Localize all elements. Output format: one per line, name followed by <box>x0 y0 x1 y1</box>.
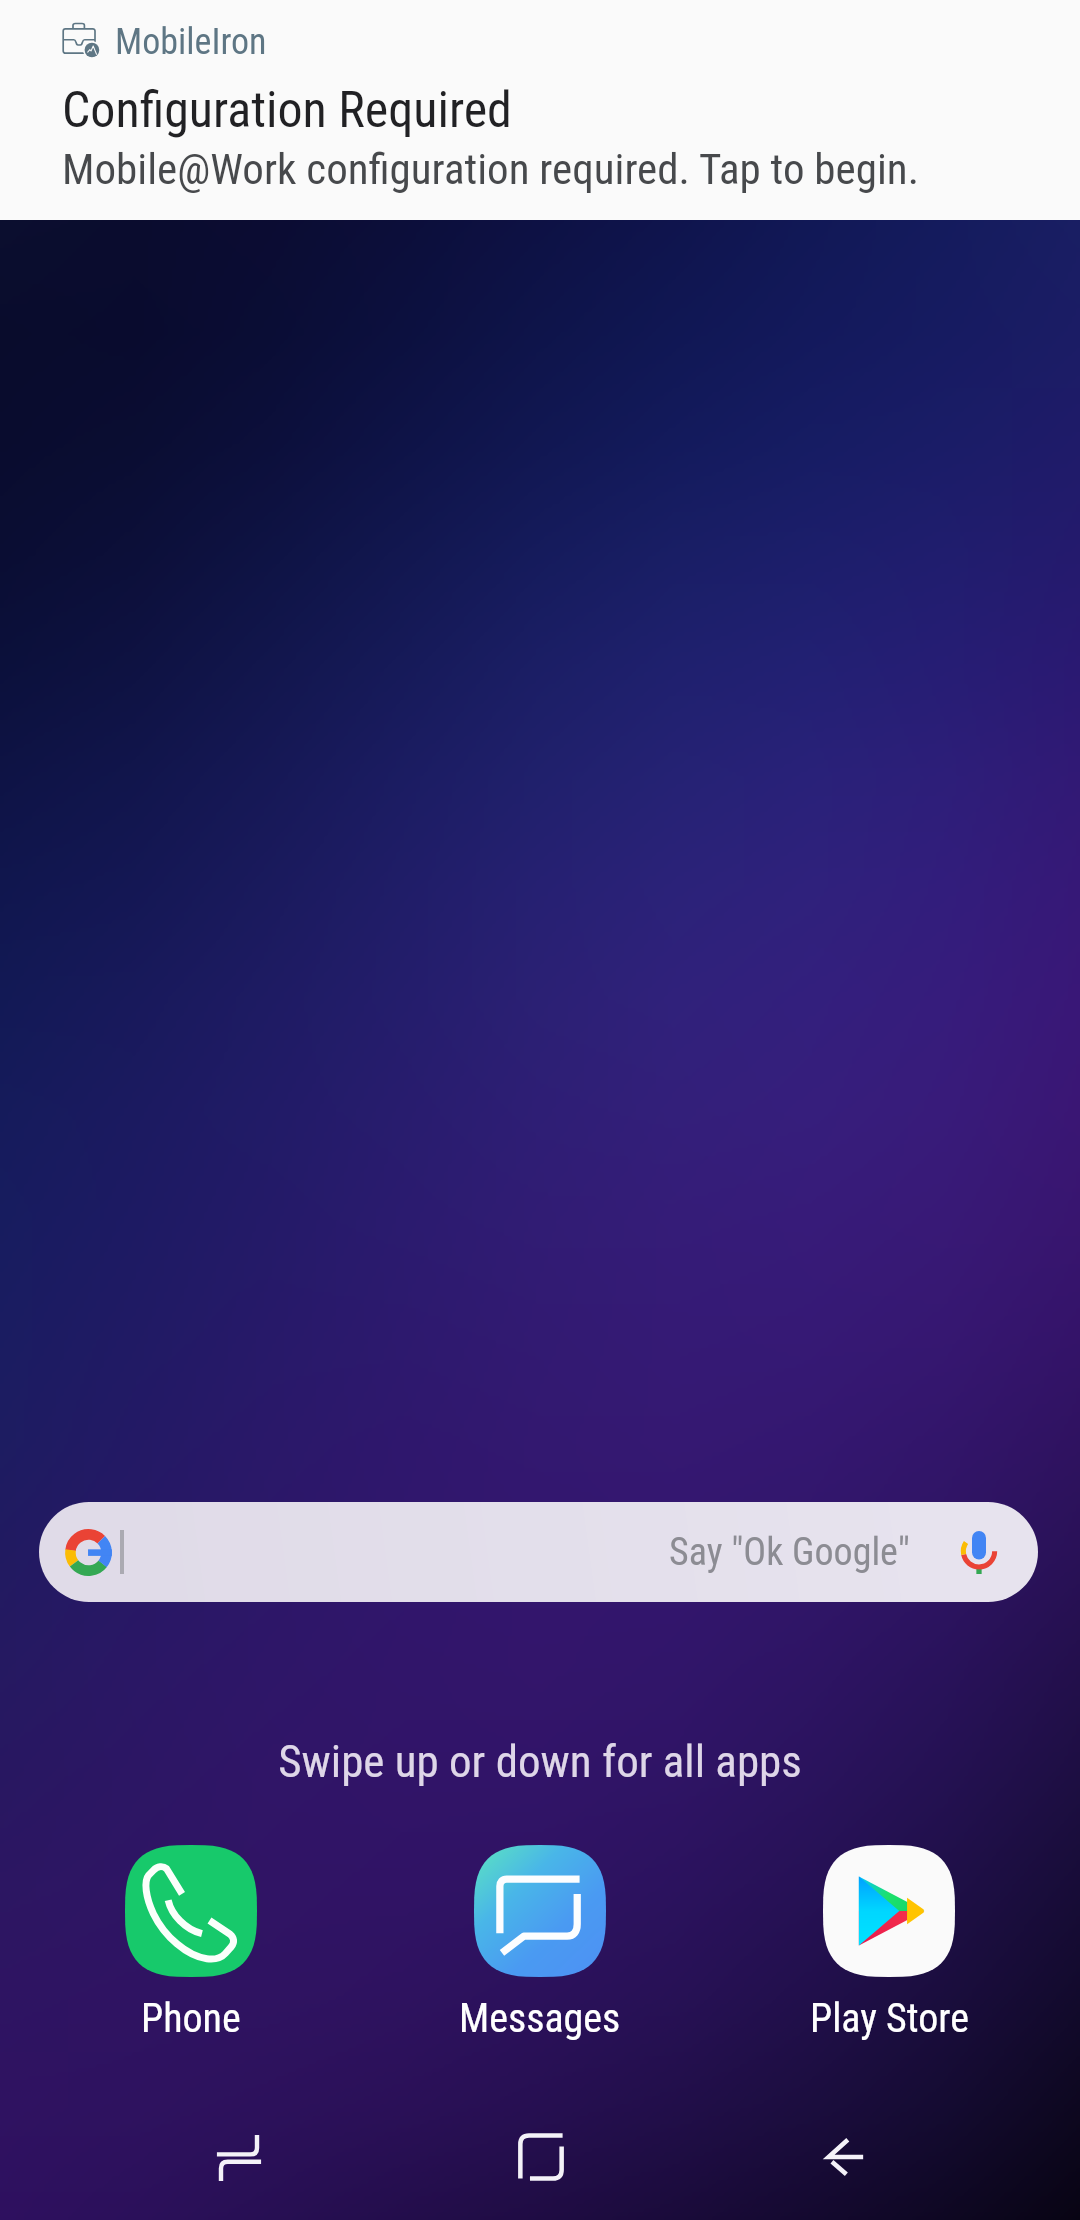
button[interactable]: Back <box>783 2097 903 2217</box>
button[interactable]: Phone <box>65 1845 317 2042</box>
staticText: Messages <box>459 1995 621 2042</box>
staticText: Mobile@Work configuration required. Tap … <box>62 144 919 194</box>
staticText: Phone <box>141 1995 241 2042</box>
button[interactable]: Recents <box>179 2097 299 2217</box>
other: Voice search <box>957 1530 1001 1574</box>
button[interactable]: Say "Ok Google" <box>39 1502 1038 1602</box>
staticText: Swipe up or down for all apps <box>0 1735 1080 1788</box>
staticText: MobileIron <box>115 21 267 63</box>
button[interactable]: MobileIron <box>0 0 1080 220</box>
button[interactable]: Play Store <box>763 1845 1015 2042</box>
button[interactable]: Home <box>481 2097 601 2217</box>
button[interactable]: Messages <box>414 1845 666 2042</box>
staticText: Say "Ok Google" <box>669 1530 910 1575</box>
staticText: Play Store <box>810 1995 969 2042</box>
staticText: Configuration Required <box>62 81 512 140</box>
